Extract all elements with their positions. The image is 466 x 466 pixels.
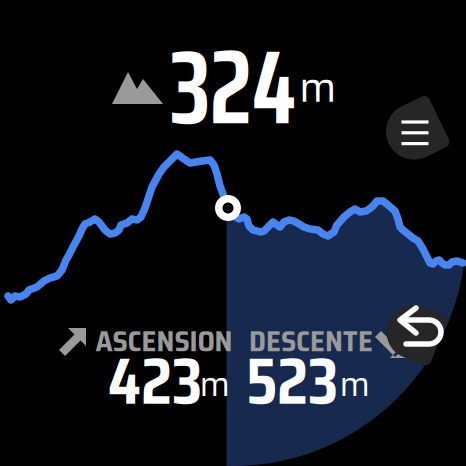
button[interactable]: Menu xyxy=(0,0,466,466)
button[interactable]: Back xyxy=(0,0,466,466)
staticText: ASCENSION xyxy=(95,318,232,364)
staticText: m xyxy=(199,357,230,411)
staticText: 523 xyxy=(246,330,338,432)
staticText: m xyxy=(339,357,370,411)
staticText: DESCENTE xyxy=(249,318,373,364)
staticText: 423 xyxy=(108,330,202,432)
staticText: 324 xyxy=(170,5,296,169)
staticText: m xyxy=(299,53,337,121)
